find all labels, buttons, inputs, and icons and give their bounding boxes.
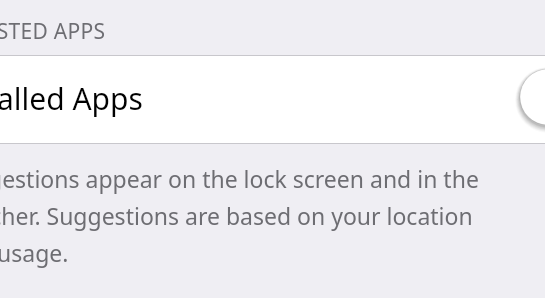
staticText: switcher. Suggestions are based on your … [0, 200, 492, 231]
staticText: Installed Apps [0, 78, 143, 119]
button[interactable]: Installed Apps [0, 55, 545, 144]
staticText: Suggestions appear on the lock screen an… [0, 163, 492, 194]
staticText: usage. [0, 237, 69, 268]
staticText: SUGGESTED APPS [0, 17, 106, 46]
button[interactable]: Installed Apps toggle [514, 63, 545, 131]
